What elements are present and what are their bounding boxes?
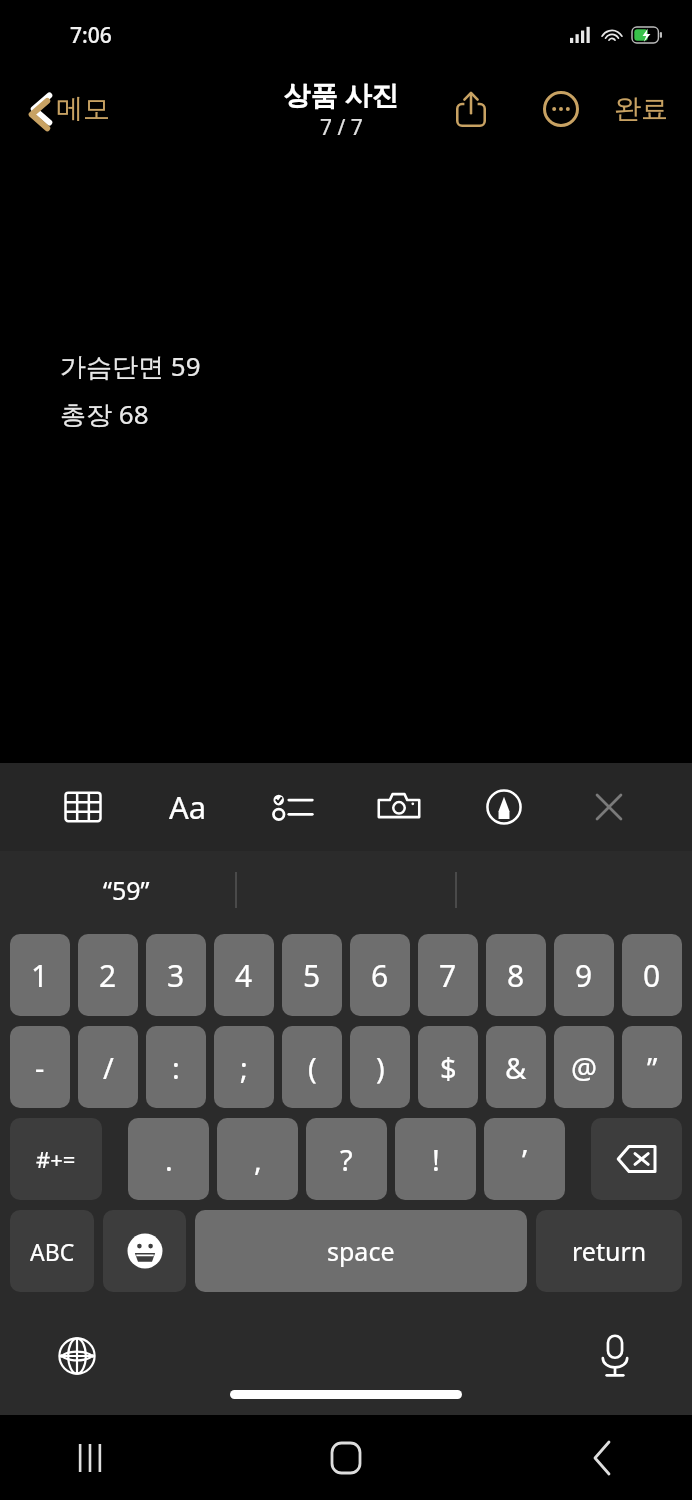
- button[interactable]: ABC: [10, 1210, 94, 1292]
- staticText: 상품 사진: [283, 76, 399, 113]
- button[interactable]: /: [78, 1026, 138, 1108]
- button[interactable]: Text format: [165, 784, 211, 830]
- staticText: 9: [575, 955, 593, 996]
- staticText: :: [172, 1048, 180, 1087]
- staticText: 총장 68: [60, 396, 149, 432]
- button[interactable]: 메모: [22, 83, 116, 135]
- staticText: 0: [643, 955, 661, 996]
- staticText: 메모: [56, 92, 110, 126]
- button[interactable]: Recents: [60, 1428, 120, 1488]
- button[interactable]: #+=: [10, 1118, 102, 1200]
- staticText: 1: [31, 955, 49, 996]
- button[interactable]: Markup: [481, 784, 527, 830]
- button[interactable]: Backspace: [591, 1118, 682, 1200]
- staticText: &: [505, 1048, 527, 1087]
- button[interactable]: :: [146, 1026, 206, 1108]
- staticText: ?: [340, 1140, 353, 1179]
- staticText: Aa: [169, 786, 207, 828]
- button[interactable]: 9: [554, 934, 614, 1016]
- staticText: 5: [303, 955, 321, 996]
- staticText: return: [572, 1234, 647, 1268]
- button[interactable]: 4: [214, 934, 274, 1016]
- staticText: “59”: [103, 873, 150, 907]
- button[interactable]: ;: [214, 1026, 274, 1108]
- button[interactable]: ,: [217, 1118, 298, 1200]
- button[interactable]: return: [536, 1210, 682, 1292]
- staticText: 7:06: [70, 21, 112, 50]
- staticText: 7 / 7: [320, 113, 363, 142]
- staticText: @: [571, 1048, 598, 1087]
- button[interactable]: Back: [572, 1428, 632, 1488]
- button[interactable]: 0: [622, 934, 682, 1016]
- button[interactable]: Change keyboard: [48, 1327, 106, 1385]
- button[interactable]: 완료: [610, 84, 672, 134]
- button[interactable]: ): [350, 1026, 410, 1108]
- staticText: -: [35, 1048, 45, 1087]
- button[interactable]: Home: [316, 1428, 376, 1488]
- button[interactable]: .: [128, 1118, 209, 1200]
- staticText: 6: [371, 955, 389, 996]
- staticText: (: [308, 1048, 317, 1087]
- button[interactable]: Table: [60, 784, 106, 830]
- button[interactable]: Checklist: [270, 784, 316, 830]
- button[interactable]: 5: [282, 934, 342, 1016]
- staticText: 2: [99, 955, 117, 996]
- staticText: 완료: [614, 92, 668, 126]
- staticText: /: [103, 1048, 114, 1087]
- button[interactable]: 1: [10, 934, 70, 1016]
- staticText: ,: [254, 1140, 262, 1179]
- button[interactable]: 3: [146, 934, 206, 1016]
- staticText: space: [327, 1234, 395, 1268]
- button[interactable]: 2: [78, 934, 138, 1016]
- button[interactable]: Camera: [376, 784, 422, 830]
- staticText: #+=: [36, 1144, 76, 1174]
- staticText: 7: [439, 955, 457, 996]
- staticText: $: [440, 1048, 457, 1087]
- staticText: 3: [167, 955, 185, 996]
- button[interactable]: !: [395, 1118, 476, 1200]
- button[interactable]: ’: [484, 1118, 565, 1200]
- staticText: 가슴단면 59: [60, 348, 201, 384]
- staticText: ;: [240, 1048, 248, 1087]
- button[interactable]: Emoji: [103, 1210, 186, 1292]
- button[interactable]: &: [486, 1026, 546, 1108]
- staticText: ”: [647, 1048, 658, 1087]
- button[interactable]: $: [418, 1026, 478, 1108]
- button[interactable]: 8: [486, 934, 546, 1016]
- button[interactable]: -: [10, 1026, 70, 1108]
- button[interactable]: @: [554, 1026, 614, 1108]
- button[interactable]: space: [195, 1210, 527, 1292]
- button[interactable]: ?: [306, 1118, 387, 1200]
- staticText: 4: [235, 955, 253, 996]
- button[interactable]: 6: [350, 934, 410, 1016]
- staticText: ’: [522, 1140, 528, 1179]
- staticText: !: [432, 1140, 440, 1179]
- button[interactable]: ”: [622, 1026, 682, 1108]
- button[interactable]: (: [282, 1026, 342, 1108]
- button[interactable]: Close: [586, 784, 632, 830]
- staticText: ): [376, 1048, 385, 1087]
- button[interactable]: Share: [444, 82, 498, 136]
- button[interactable]: More options: [534, 82, 588, 136]
- staticText: .: [165, 1140, 173, 1179]
- button[interactable]: Voice input: [586, 1327, 644, 1385]
- staticText: 8: [507, 955, 525, 996]
- staticText: ABC: [30, 1236, 75, 1267]
- button[interactable]: 7: [418, 934, 478, 1016]
